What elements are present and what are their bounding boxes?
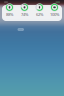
button[interactable]: Batteries widget [2,5,62,21]
staticText: 74% [21,12,28,17]
staticText: 88% [6,12,13,17]
staticText: 62% [36,12,43,17]
staticText: 100% [50,12,59,17]
